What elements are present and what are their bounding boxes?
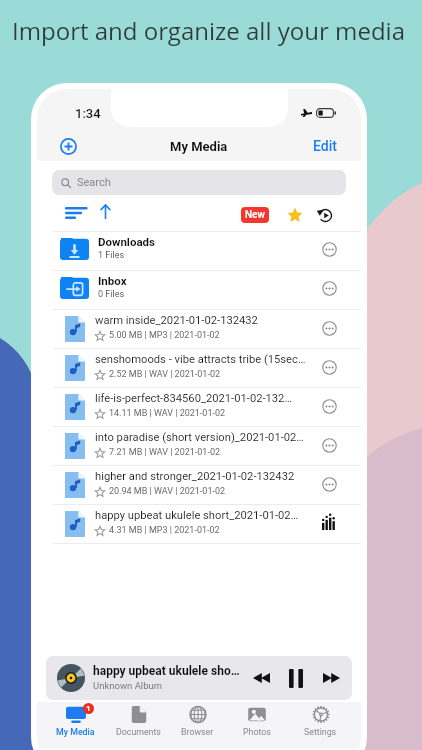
button[interactable]: life-is-perfect-834560_2021-01-02-132… [37, 388, 361, 426]
staticText: happy upbeat ukulele short_2021-01-02… [95, 509, 299, 522]
button[interactable]: More options [319, 396, 339, 416]
button[interactable]: More options [319, 357, 339, 377]
staticText: into paradise (short version)_2021-01-02… [95, 431, 304, 444]
staticText: My Media [170, 139, 228, 154]
button[interactable]: senshomoods - vibe attracts tribe (15sec… [37, 349, 361, 387]
staticText: life-is-perfect-834560_2021-01-02-132… [95, 392, 292, 405]
staticText: Unknown Album [93, 680, 163, 691]
staticText: 1 [86, 704, 91, 713]
button[interactable]: Pause [284, 666, 308, 690]
button[interactable]: happy upbeat ukulele short_2021-01-02… [37, 505, 361, 543]
button[interactable]: Search [52, 170, 346, 195]
staticText: 0 Files [98, 289, 125, 300]
button[interactable]: Documents [110, 702, 166, 748]
button[interactable]: Edit [310, 135, 340, 157]
staticText: Photos [243, 727, 271, 737]
staticText: My Media [56, 727, 95, 737]
button[interactable]: More options [319, 278, 339, 298]
staticText: 4.31 MB | MP3 | 2021-01-02 [109, 525, 220, 536]
button[interactable]: New [241, 207, 269, 223]
staticText: 5.00 MB | MP3 | 2021-01-02 [109, 330, 220, 341]
staticText: senshomoods - vibe attracts tribe (15sec… [95, 353, 306, 366]
staticText: Downloads [98, 235, 155, 248]
staticText: Settings [304, 727, 337, 737]
staticText: 1:34 [75, 106, 101, 121]
staticText: 2.52 MB | WAV | 2021-01-02 [109, 369, 221, 380]
staticText: Import and organize all your media [12, 14, 406, 47]
button[interactable]: Ascending [97, 201, 114, 222]
staticText: Search [77, 176, 111, 189]
staticText: 20.94 MB | WAV | 2021-01-02 [109, 486, 226, 497]
button[interactable]: 1 [47, 702, 103, 748]
button[interactable]: higher and stronger_2021-01-02-132432 [37, 466, 361, 504]
staticText: 7.21 MB | WAV | 2021-01-02 [109, 447, 221, 458]
button[interactable]: Photos [229, 702, 285, 748]
button[interactable]: More options [319, 318, 339, 338]
staticText: 14.11 MB | WAV | 2021-01-02 [109, 408, 226, 419]
button[interactable]: Sort [62, 204, 90, 222]
staticText: Edit [313, 138, 337, 154]
button[interactable]: into paradise (short version)_2021-01-02… [37, 427, 361, 465]
button[interactable]: Next [319, 666, 343, 690]
staticText: warm inside_2021-01-02-132432 [95, 314, 258, 327]
button[interactable]: Settings [292, 702, 348, 748]
staticText: Documents [116, 727, 161, 737]
button[interactable]: happy upbeat ukulele sho… [46, 656, 352, 700]
button[interactable]: Recent [316, 206, 334, 224]
staticText: 1 Files [98, 250, 125, 261]
button[interactable]: Previous [249, 666, 273, 690]
button[interactable]: Inbox [37, 271, 361, 309]
button[interactable]: warm inside_2021-01-02-132432 [37, 310, 361, 348]
button[interactable]: More options [319, 474, 339, 494]
staticText: Inbox [98, 274, 127, 287]
staticText: higher and stronger_2021-01-02-132432 [95, 470, 295, 483]
button[interactable]: More options [319, 435, 339, 455]
button[interactable]: Add [56, 134, 81, 159]
button[interactable]: Favourites [286, 206, 304, 224]
button[interactable]: Browser [169, 702, 225, 748]
button[interactable]: Downloads [37, 232, 361, 270]
staticText: Browser [181, 727, 214, 737]
staticText: happy upbeat ukulele sho… [93, 664, 240, 678]
button[interactable]: Now playing [319, 513, 339, 533]
staticText: New [245, 209, 265, 221]
button[interactable]: More options [319, 239, 339, 259]
